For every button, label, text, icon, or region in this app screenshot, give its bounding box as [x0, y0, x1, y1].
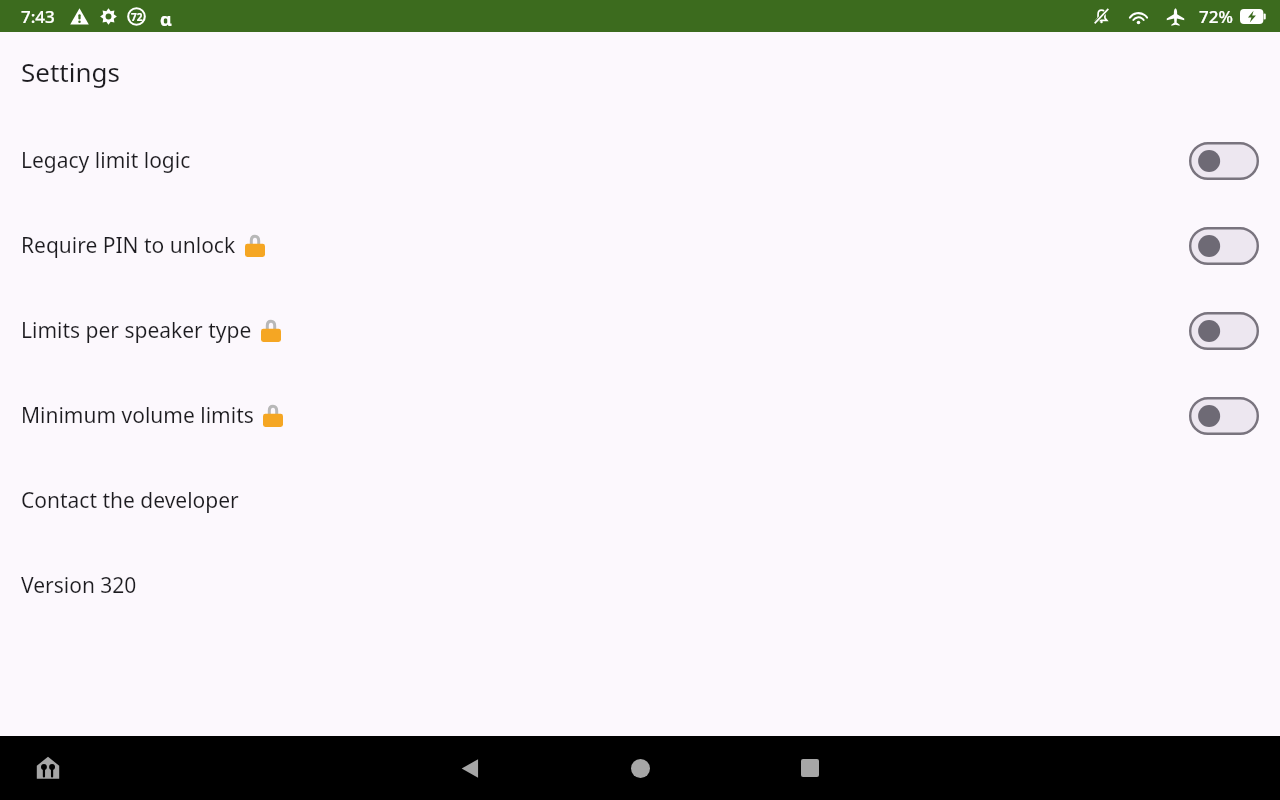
staticText: Contact the developer [21, 486, 239, 515]
button[interactable]: Limits per speaker type [0, 288, 1280, 373]
staticText: 7:43 [21, 5, 55, 28]
button[interactable]: Recent apps [786, 744, 834, 792]
button[interactable]: Minimum volume limits [0, 373, 1280, 458]
button[interactable]: Home [616, 744, 664, 792]
button[interactable]: Version 320 [0, 543, 1280, 628]
button[interactable]: Toggle [1189, 397, 1259, 435]
staticText: Version 320 [21, 571, 137, 600]
button[interactable]: Toggle [1189, 142, 1259, 180]
button[interactable]: Toggle [1189, 312, 1259, 350]
staticText: Settings [21, 54, 120, 89]
staticText: α [160, 7, 172, 26]
staticText: Minimum volume limits [21, 401, 254, 430]
staticText: Limits per speaker type [21, 316, 252, 345]
button[interactable]: Toggle [1189, 227, 1259, 265]
staticText: 72 [131, 10, 143, 24]
staticText: Legacy limit logic [21, 146, 191, 175]
button[interactable]: Back [446, 744, 494, 792]
button[interactable]: Contact the developer [0, 458, 1280, 543]
staticText: Require PIN to unlock [21, 231, 236, 260]
button[interactable]: Legacy limit logic [0, 118, 1280, 203]
button[interactable]: Switch input method [30, 750, 66, 786]
staticText: 72% [1199, 5, 1233, 28]
button[interactable]: Require PIN to unlock [0, 203, 1280, 288]
